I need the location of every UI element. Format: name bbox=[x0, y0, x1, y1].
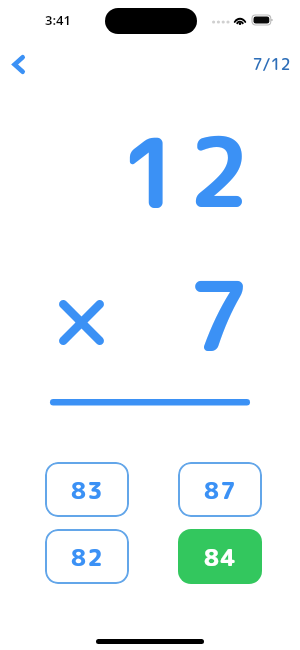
staticText: 3:41 bbox=[45, 11, 71, 29]
button[interactable]: 82 bbox=[45, 529, 129, 584]
staticText: 1 bbox=[120, 105, 182, 239]
staticText: 84 bbox=[204, 541, 238, 573]
staticText: 7 bbox=[188, 248, 250, 382]
staticText: 2 bbox=[188, 104, 250, 238]
staticText: 7/12 bbox=[252, 53, 291, 75]
staticText: 83 bbox=[71, 474, 105, 506]
button[interactable]: 7/12 bbox=[249, 50, 293, 78]
staticText: 87 bbox=[204, 474, 238, 506]
button[interactable]: 87 bbox=[178, 462, 262, 517]
staticText: 82 bbox=[71, 541, 105, 573]
button[interactable]: 83 bbox=[45, 462, 129, 517]
button[interactable]: 84 bbox=[178, 529, 262, 584]
button[interactable]: Back bbox=[3, 49, 33, 79]
